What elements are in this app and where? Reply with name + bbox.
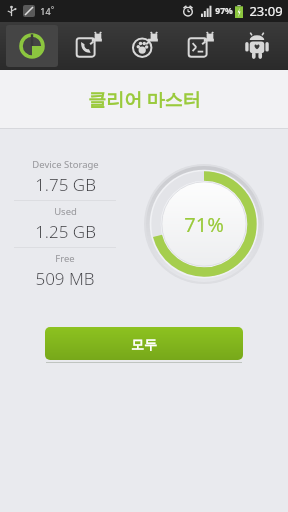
staticText: 1.75 GB [35,173,96,196]
staticText: Free [55,252,75,265]
button[interactable]: Android health [232,25,282,67]
staticText: 71% [184,211,224,238]
button[interactable]: Call cleaner [64,25,114,67]
staticText: Used [54,205,77,218]
staticText: 클리어 마스터 [88,87,201,112]
staticText: 97% [215,5,233,17]
staticText: Device Storage [32,158,99,171]
staticText: 1.25 GB [35,220,96,243]
button[interactable]: App cleaner [120,25,170,67]
staticText: ° [51,5,54,15]
staticText: 모두 [131,336,157,352]
staticText: 23:09 [249,2,283,20]
button[interactable]: Cleaner [6,25,58,67]
staticText: 14 [40,5,51,17]
button[interactable]: Terminal cleaner [176,25,226,67]
button[interactable]: 모두 [45,327,243,360]
staticText: 509 MB [35,267,95,290]
